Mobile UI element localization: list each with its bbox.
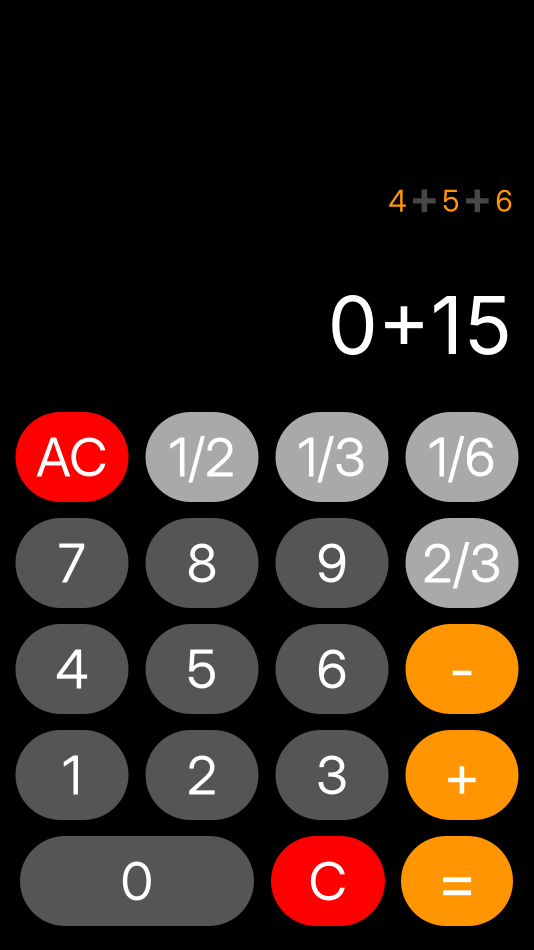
staticText: 0 (120, 849, 153, 913)
button[interactable]: Minus (405, 624, 518, 714)
button[interactable]: All clear (15, 412, 128, 502)
staticText: 4 (55, 637, 88, 701)
button[interactable]: one sixth (405, 412, 518, 502)
staticText: + (409, 170, 439, 224)
staticText: 8 (186, 531, 217, 595)
staticText: C (308, 849, 347, 913)
staticText: 3 (316, 743, 348, 807)
staticText: 1/3 (298, 425, 366, 489)
staticText: 5 (442, 183, 459, 219)
button[interactable]: 2 (145, 730, 258, 820)
staticText: 1/2 (169, 425, 235, 489)
staticText: 6 (495, 183, 512, 219)
staticText: 2 (187, 743, 217, 807)
staticText: 1/6 (428, 425, 495, 489)
staticText: 9 (316, 531, 347, 595)
staticText: 1 (62, 743, 81, 807)
button[interactable]: one third (275, 412, 388, 502)
button[interactable]: 0 (20, 836, 254, 926)
staticText: 6 (316, 637, 347, 701)
button[interactable]: 7 (15, 518, 128, 608)
staticText: - (449, 633, 474, 704)
button[interactable]: Clear (271, 836, 385, 926)
staticText: + (462, 170, 492, 224)
button[interactable]: 4 (15, 624, 128, 714)
staticText: = (437, 842, 477, 920)
staticText: 0+15 (327, 277, 512, 373)
staticText: + (443, 739, 480, 810)
button[interactable]: Plus (405, 730, 518, 820)
button[interactable]: 3 (275, 730, 388, 820)
button[interactable]: 6 (275, 624, 388, 714)
button[interactable]: 1 (15, 730, 128, 820)
button[interactable]: 8 (145, 518, 258, 608)
staticText: 7 (58, 531, 86, 595)
staticText: 5 (186, 637, 217, 701)
staticText: AC (36, 425, 108, 489)
button[interactable]: one half (145, 412, 258, 502)
button[interactable]: two thirds (405, 518, 518, 608)
staticText: 4 (388, 183, 406, 219)
button[interactable]: 9 (275, 518, 388, 608)
staticText: 2/3 (422, 531, 501, 595)
button[interactable]: 5 (145, 624, 258, 714)
button[interactable]: Equals (401, 836, 513, 926)
